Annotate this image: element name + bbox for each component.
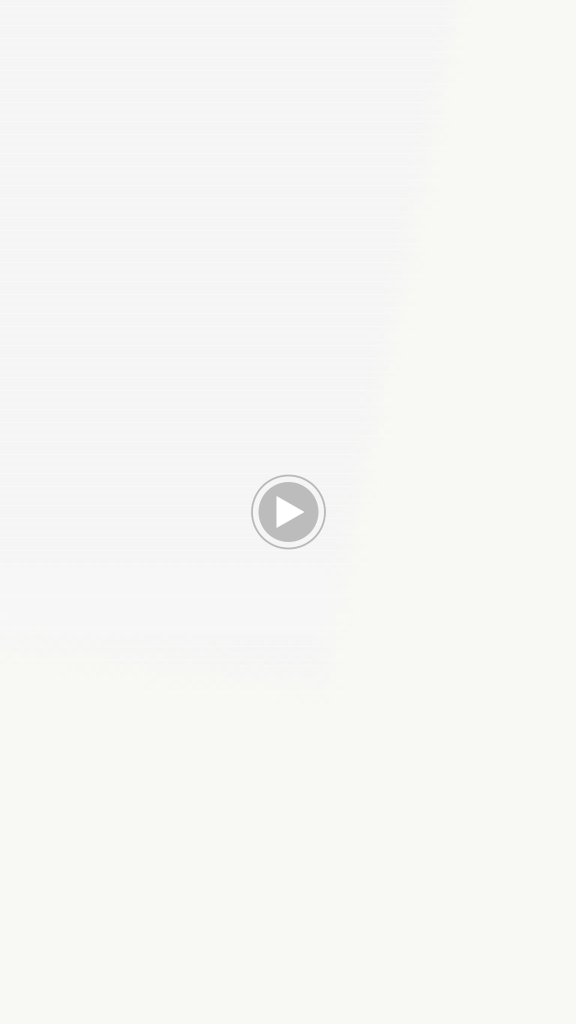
button[interactable]: Play xyxy=(250,474,326,550)
